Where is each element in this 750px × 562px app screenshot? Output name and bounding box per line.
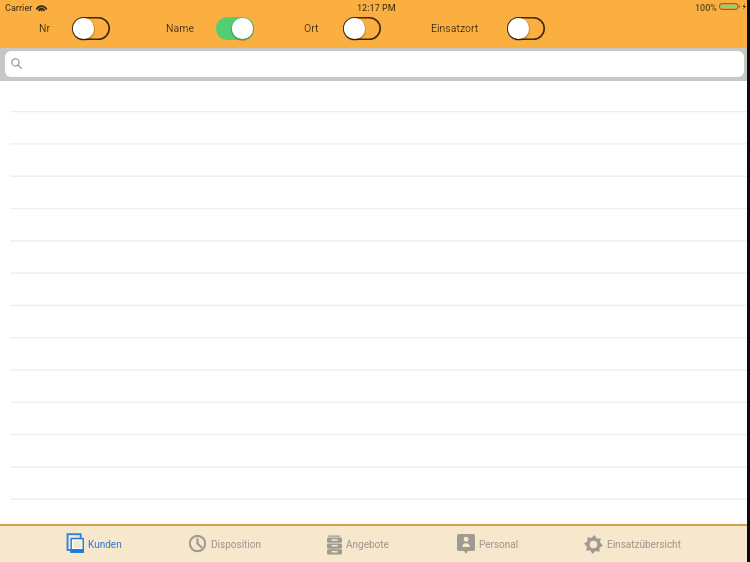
button[interactable]: Personal [457,529,518,555]
staticText: Nr [39,22,51,34]
button[interactable]: Einsatzübersicht [584,529,682,555]
button[interactable]: Einsatzort filter off [507,17,545,40]
staticText: Kunden [88,539,122,551]
staticText: Angebote [346,539,389,551]
button[interactable] [0,435,750,467]
button[interactable]: Search [5,51,744,77]
button[interactable] [0,306,750,338]
button[interactable] [0,145,750,177]
button[interactable] [0,177,750,209]
button[interactable] [0,209,750,241]
button[interactable]: Kunden [67,529,122,555]
staticText: Personal [479,539,519,551]
button[interactable] [0,80,750,112]
button[interactable]: Disposition [189,529,261,555]
button[interactable] [0,371,750,403]
staticText: Carrier [5,3,33,14]
staticText: Name [166,22,194,34]
button[interactable] [0,112,750,144]
button[interactable]: Name filter on [216,17,254,40]
button[interactable] [0,274,750,306]
button[interactable]: Nr filter off [72,17,110,40]
button[interactable] [0,242,750,274]
button[interactable] [0,500,750,532]
button[interactable]: Angebote [327,529,390,555]
button[interactable]: Ort filter off [343,17,381,40]
staticText: Ort [304,22,319,34]
button[interactable] [0,403,750,435]
staticText: 12:17 PM [357,3,396,14]
staticText: Disposition [211,539,261,551]
button[interactable] [0,338,750,370]
staticText: Einsatzort [431,22,479,34]
button[interactable] [0,468,750,500]
staticText: 100% [695,3,717,14]
staticText: Einsatzübersicht [607,539,681,551]
